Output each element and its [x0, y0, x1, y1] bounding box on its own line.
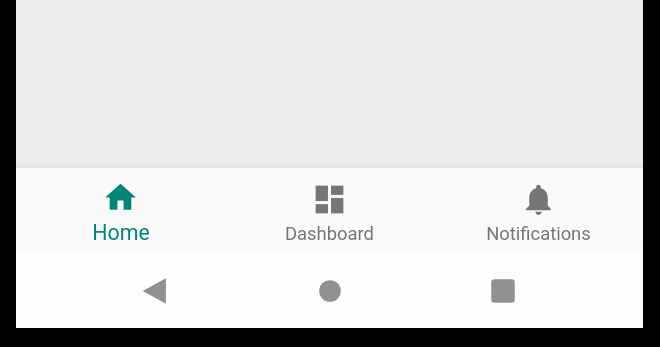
- button[interactable]: Recent apps: [475, 254, 531, 328]
- staticText: Home: [92, 220, 150, 245]
- button[interactable]: Dashboard: [225, 168, 434, 254]
- button[interactable]: Home: [16, 168, 225, 254]
- button[interactable]: Back: [127, 254, 183, 328]
- button[interactable]: Home: [302, 254, 358, 328]
- button[interactable]: Notifications: [434, 168, 643, 254]
- staticText: Dashboard: [285, 223, 374, 245]
- staticText: Notifications: [486, 223, 591, 245]
